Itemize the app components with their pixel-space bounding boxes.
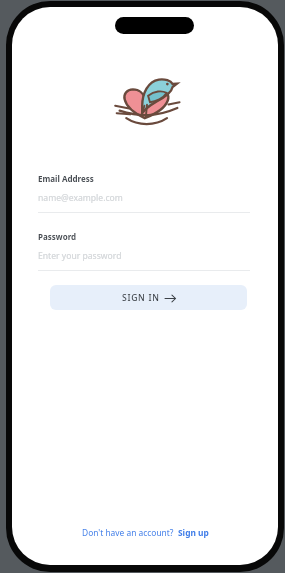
staticText: Email Address (38, 173, 94, 184)
button[interactable]: Enter your password (38, 250, 250, 262)
other: Sign in (165, 294, 176, 303)
button[interactable]: Don't have an account? (82, 527, 209, 538)
staticText: Sign up (178, 527, 209, 538)
button[interactable]: name@example.com (38, 192, 250, 204)
staticText: Password (38, 231, 77, 242)
other: App logo (110, 70, 184, 128)
staticText: Don't have an account? (82, 527, 174, 538)
staticText: SIGN IN (122, 292, 160, 304)
staticText: name@example.com (38, 192, 123, 204)
staticText: Enter your password (38, 250, 122, 262)
button[interactable]: SIGN IN (50, 285, 247, 310)
